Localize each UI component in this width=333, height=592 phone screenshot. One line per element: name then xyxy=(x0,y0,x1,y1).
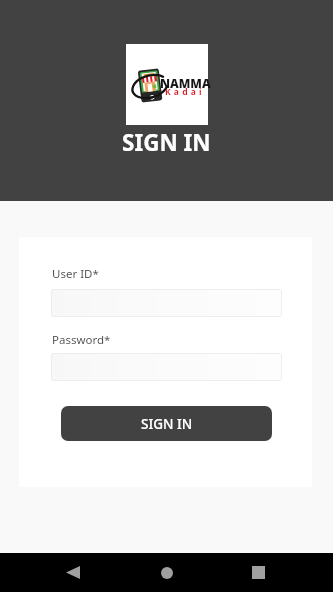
button[interactable]: Home xyxy=(143,553,191,592)
staticText: NAMMA xyxy=(160,75,211,91)
staticText: User ID* xyxy=(52,266,99,282)
staticText: SIGN IN xyxy=(141,415,193,433)
staticText: Password* xyxy=(52,332,111,348)
staticText: SIGN IN xyxy=(122,127,211,158)
button[interactable] xyxy=(51,289,282,317)
button[interactable]: Back xyxy=(49,553,97,592)
button[interactable] xyxy=(51,353,282,381)
button[interactable]: Recent apps xyxy=(234,553,282,592)
staticText: Kadai xyxy=(165,86,205,98)
button[interactable]: SIGN IN xyxy=(61,406,272,441)
